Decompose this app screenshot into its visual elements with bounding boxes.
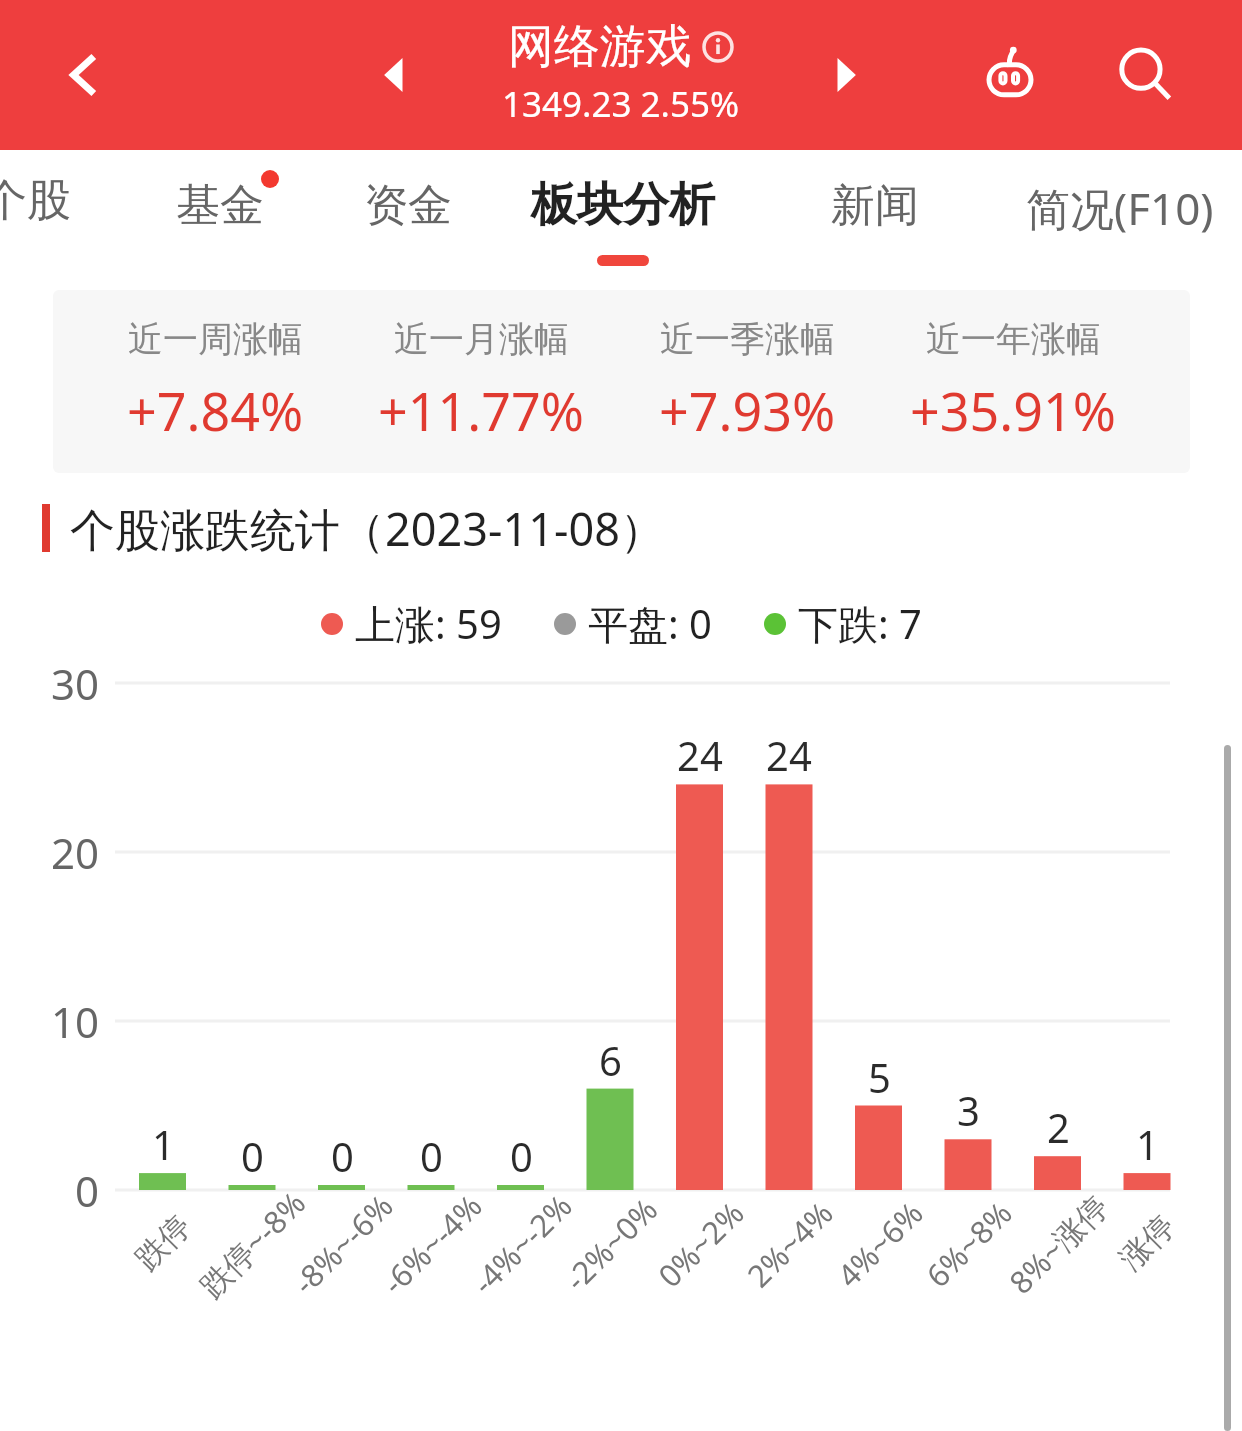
- staticText: 2%~4%: [737, 1192, 841, 1296]
- button[interactable]: 板块分析: [520, 150, 725, 280]
- staticText: -8%~-6%: [283, 1185, 402, 1303]
- button[interactable]: Previous sector: [355, 35, 435, 115]
- button[interactable]: 资金: [333, 150, 483, 260]
- staticText: 个股: [0, 173, 71, 228]
- button[interactable]: 网络游戏: [502, 18, 740, 128]
- staticText: 24: [766, 728, 812, 782]
- staticText: 24: [677, 728, 723, 782]
- staticText: 2: [1047, 1100, 1070, 1154]
- staticText: 网络游戏: [508, 18, 692, 76]
- staticText: 10: [51, 993, 100, 1050]
- staticText: 资金: [364, 178, 452, 233]
- staticText: -4%~-2%: [462, 1185, 581, 1303]
- staticText: 0%~2%: [648, 1192, 752, 1296]
- staticText: 0: [75, 1162, 100, 1219]
- staticText: 简况(F10): [1026, 178, 1214, 238]
- button[interactable]: Search: [1095, 25, 1195, 125]
- staticText: 跌停: [127, 1207, 199, 1278]
- staticText: 1: [152, 1117, 175, 1171]
- button[interactable]: 新闻: [800, 150, 950, 260]
- staticText: 下跌: 7: [798, 596, 922, 651]
- staticText: 4%~6%: [827, 1192, 931, 1296]
- staticText: 0: [331, 1129, 354, 1183]
- staticText: 近一年涨幅: [926, 317, 1101, 361]
- staticText: 30: [51, 655, 100, 712]
- staticText: 基金: [176, 178, 264, 233]
- staticText: 8%~涨停: [999, 1185, 1117, 1303]
- staticText: 近一周涨幅: [128, 317, 303, 361]
- staticText: 1: [1136, 1117, 1159, 1171]
- button[interactable]: 近一周涨幅: [53, 290, 1190, 473]
- button[interactable]: Next sector: [805, 35, 885, 115]
- staticText: 近一季涨幅: [660, 317, 835, 361]
- button[interactable]: AI assistant: [960, 25, 1060, 125]
- staticText: 3: [957, 1083, 980, 1137]
- staticText: 0: [510, 1129, 533, 1183]
- staticText: 0: [420, 1129, 443, 1183]
- button[interactable]: 个股: [0, 150, 82, 250]
- button[interactable]: Back: [40, 30, 130, 120]
- staticText: 5: [868, 1050, 891, 1104]
- staticText: 新闻: [831, 178, 919, 233]
- staticText: 6%~8%: [916, 1192, 1020, 1296]
- staticText: 上涨: 59: [355, 596, 502, 651]
- staticText: +7.93%: [659, 375, 836, 446]
- staticText: -6%~-4%: [372, 1185, 491, 1303]
- staticText: 个股涨跌统计（2023-11-08）: [70, 498, 665, 559]
- staticText: 涨停: [1111, 1207, 1183, 1278]
- staticText: +35.91%: [910, 375, 1116, 446]
- staticText: +7.84%: [127, 375, 304, 446]
- staticText: 0: [241, 1129, 264, 1183]
- staticText: 20: [51, 824, 100, 881]
- staticText: 近一月涨幅: [394, 317, 569, 361]
- staticText: 板块分析: [531, 176, 715, 234]
- staticText: +11.77%: [378, 375, 584, 446]
- staticText: 平盘: 0: [588, 596, 712, 651]
- staticText: -2%~0%: [555, 1188, 666, 1299]
- button[interactable]: 基金: [145, 150, 295, 260]
- button[interactable]: 简况(F10): [1005, 150, 1235, 260]
- staticText: 跌停~-8%: [190, 1182, 314, 1306]
- staticText: 1349.23 2.55%: [502, 80, 740, 128]
- staticText: 6: [599, 1033, 622, 1087]
